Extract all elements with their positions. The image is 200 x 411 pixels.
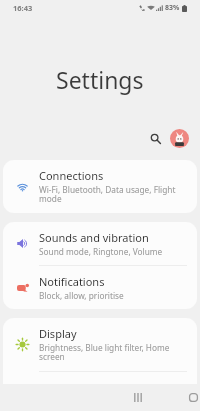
staticText: 16:43 [13,3,33,13]
staticText: Block, allow, prioritise [39,290,124,301]
staticText: 83% [165,3,180,13]
staticText: Display [39,326,77,341]
staticText: Brightness, Blue light filter, Home scre… [39,342,170,363]
staticText: Wi-Fi, Bluetooth, Data usage, Flight mod… [39,184,176,205]
button[interactable]: Wallpapers and themes [3,372,197,411]
button[interactable]: Back [150,384,200,411]
staticText: Connections [39,168,104,183]
button[interactable]: Sounds and vibration [3,222,197,265]
button[interactable]: Search [144,127,166,149]
staticText: Sound mode, Ringtone, Volume [39,246,163,257]
staticText: Wallpapers, Themes, Icons [39,396,143,407]
button[interactable]: Recent apps [38,384,200,411]
button[interactable]: Notifications [3,266,197,309]
staticText: Settings [56,64,144,95]
staticText: Wallpapers and themes [39,380,161,395]
button[interactable]: Home [93,384,200,411]
staticText: Sounds and vibration [39,230,149,245]
button[interactable]: Connections [3,160,197,213]
button[interactable]: Display [3,318,197,371]
button[interactable]: Samsung account [170,129,189,148]
staticText: Notifications [39,274,105,289]
